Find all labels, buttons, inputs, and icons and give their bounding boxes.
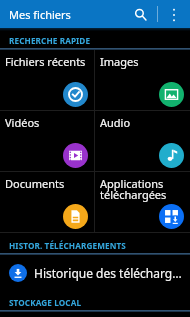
staticText: Audio: [100, 115, 131, 130]
staticText: STOCKAGE LOCAL: [9, 297, 82, 308]
button[interactable]: Fichiers récents: [0, 50, 94, 110]
button[interactable]: Documents: [0, 172, 94, 232]
button[interactable]: Images: [95, 50, 190, 110]
staticText: RECHERCHE RAPIDE: [9, 35, 91, 46]
button[interactable]: Search: [128, 2, 152, 26]
button[interactable]: Historique des télécharg…: [0, 255, 190, 290]
staticText: Applications téléchargées: [100, 176, 167, 203]
staticText: Fichiers récents: [5, 54, 86, 69]
button[interactable]: More options: [162, 3, 185, 26]
button[interactable]: Vidéos: [0, 111, 94, 171]
button[interactable]: Applications téléchargées: [95, 172, 190, 232]
staticText: Historique des télécharg…: [34, 265, 182, 281]
staticText: Documents: [5, 176, 65, 191]
staticText: Vidéos: [5, 115, 40, 130]
staticText: Mes fichiers: [9, 7, 71, 22]
button[interactable]: Audio: [95, 111, 190, 171]
staticText: HISTOR. TÉLÉCHARGEMENTS: [9, 240, 126, 251]
staticText: Images: [100, 54, 139, 69]
